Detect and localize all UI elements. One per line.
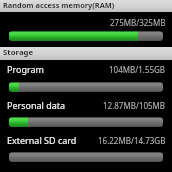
button[interactable]: External SD card — [7, 134, 166, 146]
staticText: 104MB/1.55GB — [109, 64, 166, 75]
button[interactable]: Random access memory(RAM) — [0, 0, 172, 12]
button[interactable]: Personal data — [7, 99, 166, 111]
staticText: Random access memory(RAM) — [3, 0, 115, 10]
button[interactable]: Storage — [0, 47, 172, 60]
staticText: 12.87MB/105MB — [103, 100, 166, 111]
staticText: Program — [7, 63, 44, 75]
staticText: Personal data — [7, 99, 66, 111]
button[interactable]: Program — [7, 63, 166, 75]
staticText: 16.22MB/14.73GB — [98, 135, 166, 146]
staticText: Storage — [3, 47, 34, 58]
staticText: External SD card — [7, 134, 77, 146]
staticText: 275MB/325MB — [110, 17, 166, 28]
